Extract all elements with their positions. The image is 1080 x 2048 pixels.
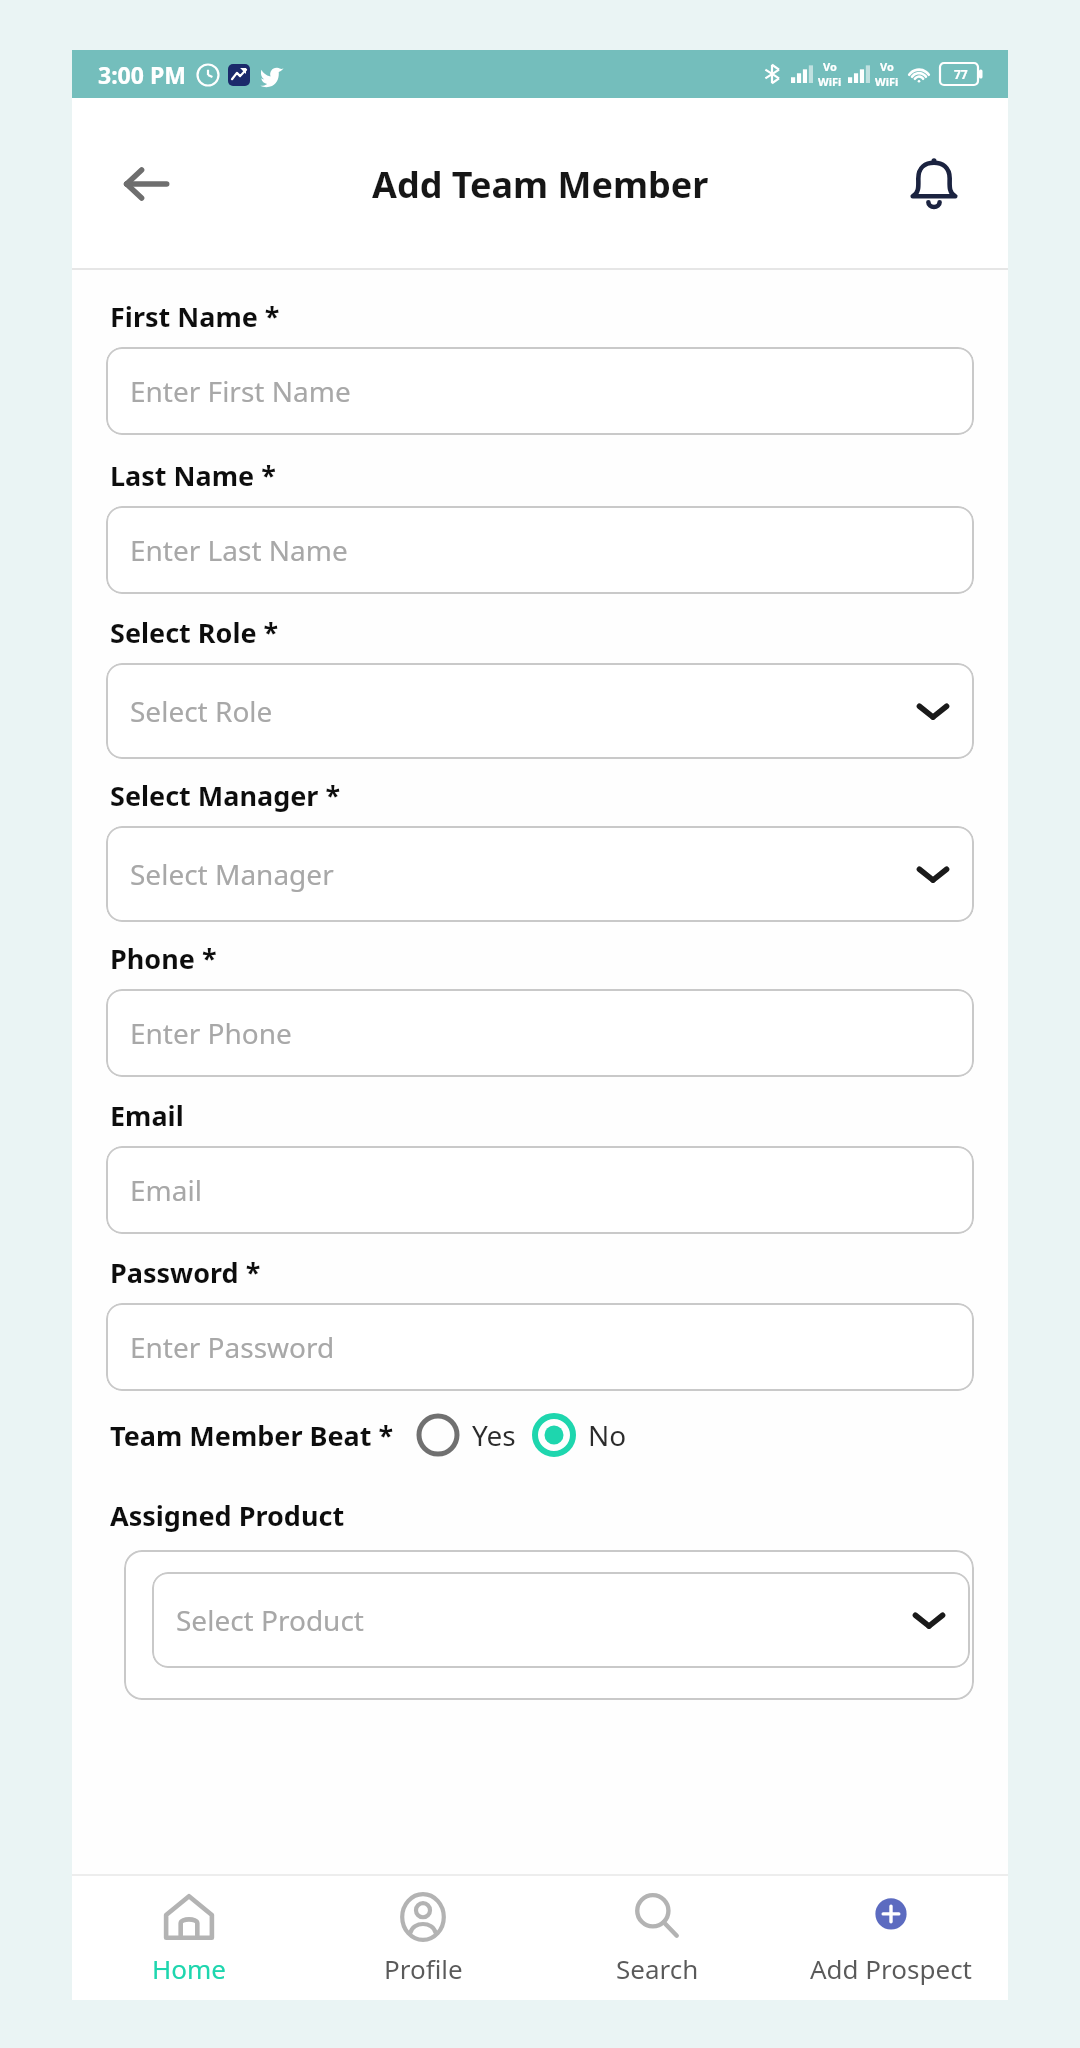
staticText: 77 [954,66,968,82]
button[interactable]: Select Product [124,1550,974,1700]
staticText: Vo [823,59,837,74]
button[interactable]: Notifications [896,146,972,222]
staticText: Last Name * [110,457,276,494]
button[interactable]: Enter Phone [106,989,974,1077]
staticText: Add Prospect [810,1951,973,1986]
staticText: 3:00 PM [98,59,186,90]
button[interactable]: Select Manager [106,826,974,922]
staticText: Yes [472,1416,516,1454]
staticText: Select Role * [110,614,279,651]
button[interactable]: No [532,1413,627,1457]
button[interactable]: Enter Last Name [106,506,974,594]
staticText: Assigned Product [110,1497,345,1534]
button[interactable]: Email [106,1146,974,1234]
staticText: Profile [384,1951,463,1986]
staticText: No [588,1416,627,1454]
button[interactable]: Back [108,146,184,222]
staticText: Team Member Beat * [110,1417,394,1454]
staticText: Enter Last Name [130,531,348,569]
button[interactable]: Select Role [106,663,974,759]
staticText: Search [616,1951,699,1986]
button[interactable]: Enter Password [106,1303,974,1391]
staticText: First Name * [110,298,280,335]
staticText: Email [110,1097,184,1134]
button[interactable]: Add Prospect [774,1876,1008,2000]
staticText: Email [130,1171,202,1209]
staticText: Phone * [110,940,217,977]
staticText: Select Manager [130,855,334,893]
staticText: Enter Password [130,1328,335,1366]
button[interactable]: Search [540,1876,774,2000]
staticText: WiFi [818,74,842,89]
staticText: Enter Phone [130,1014,292,1052]
button[interactable]: Yes [416,1413,516,1457]
button[interactable]: Home [72,1876,306,2000]
staticText: Home [152,1951,226,1986]
staticText: Password * [110,1254,261,1291]
button[interactable]: Profile [306,1876,540,2000]
staticText: Enter First Name [130,372,351,410]
staticText: Vo [880,59,894,74]
button[interactable]: Select Product [152,1572,970,1668]
button[interactable]: Enter First Name [106,347,974,435]
staticText: Select Product [176,1601,364,1639]
staticText: Select Role [130,692,273,730]
staticText: Add Team Member [372,160,709,209]
staticText: Select Manager * [110,777,341,814]
staticText: WiFi [875,74,899,89]
